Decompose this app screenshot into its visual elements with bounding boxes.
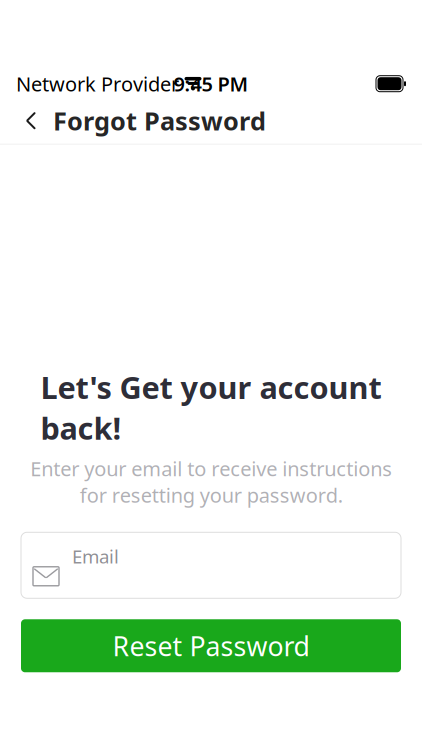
staticText: Enter your email to receive instructions… (30, 455, 392, 508)
button[interactable]: Email (21, 532, 401, 598)
staticText: Let's Get your account back! (40, 367, 381, 448)
staticText: Reset Password (112, 628, 309, 663)
staticText: 9:45 PM (173, 70, 248, 97)
staticText: Forgot Password (53, 104, 266, 137)
button[interactable]: Back (9, 98, 53, 144)
staticText: Email (72, 544, 119, 569)
staticText: Network Provider (16, 70, 179, 97)
button[interactable]: Reset Password (21, 619, 401, 672)
